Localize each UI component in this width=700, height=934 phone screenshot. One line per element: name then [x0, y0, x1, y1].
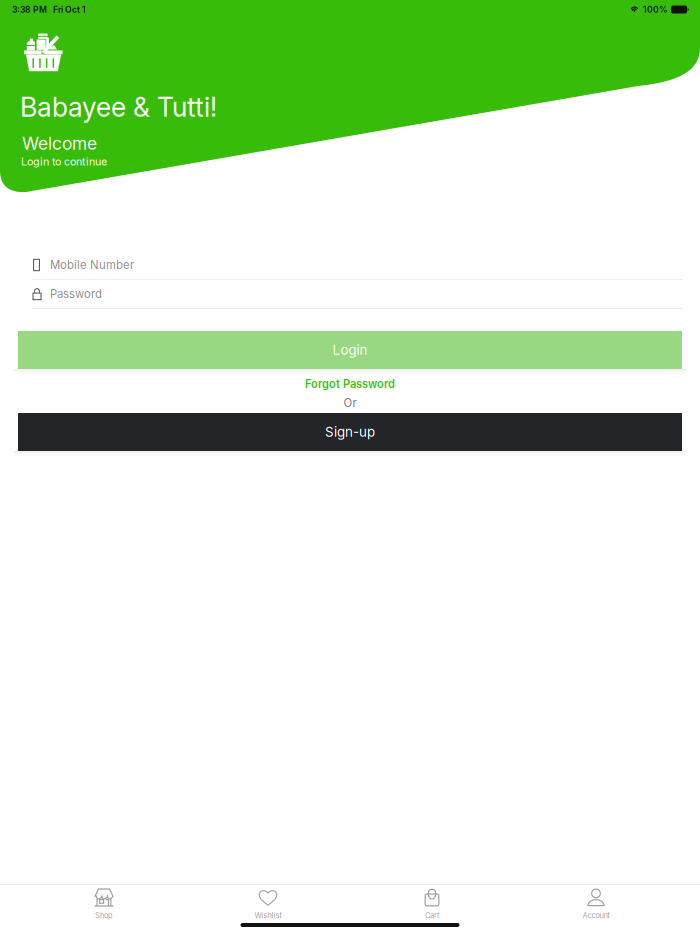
- staticText: Fri Oct 1: [53, 4, 86, 15]
- staticText: Welcome: [22, 133, 97, 154]
- staticText: Babayee & Tutti!: [20, 91, 217, 123]
- button[interactable]: Sign-up: [18, 413, 682, 451]
- staticText: Cart: [425, 911, 439, 920]
- staticText: 3:38 PM: [12, 4, 47, 15]
- button[interactable]: Login: [18, 331, 682, 369]
- button[interactable]: Account: [514, 885, 678, 921]
- staticText: Forgot Password: [305, 377, 395, 391]
- button[interactable]: Password: [32, 280, 682, 308]
- staticText: Password: [50, 287, 102, 301]
- staticText: Mobile Number: [50, 258, 134, 272]
- button[interactable]: Mobile Number: [32, 251, 682, 279]
- staticText: Wishlist: [254, 911, 281, 920]
- staticText: Account: [582, 911, 609, 920]
- button[interactable]: Cart: [350, 885, 514, 921]
- staticText: 100%: [643, 4, 668, 15]
- button[interactable]: Forgot Password: [18, 376, 682, 392]
- button[interactable]: Shop: [22, 885, 186, 921]
- staticText: Sign-up: [325, 424, 375, 440]
- button[interactable]: Wishlist: [186, 885, 350, 921]
- staticText: Login: [332, 342, 367, 358]
- staticText: Login to continue: [21, 155, 107, 168]
- staticText: Shop: [95, 911, 113, 920]
- staticText: Or: [343, 396, 356, 410]
